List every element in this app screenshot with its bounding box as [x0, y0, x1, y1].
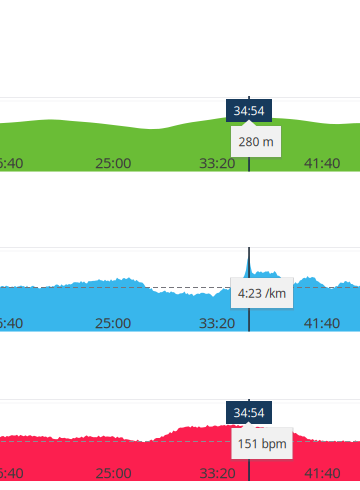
- staticText: 34:54: [233, 102, 264, 118]
- staticText: 33:20: [199, 153, 235, 172]
- staticText: 6:40: [0, 463, 23, 482]
- staticText: 33:20: [199, 313, 235, 332]
- staticText: 4:23 /km: [238, 285, 286, 301]
- staticText: 6:40: [0, 153, 23, 172]
- button[interactable]: Elevation 280 metres: [231, 126, 281, 157]
- staticText: 41:40: [304, 463, 340, 482]
- button[interactable]: Pace 4:23 per kilometre: [231, 278, 293, 308]
- staticText: 25:00: [95, 153, 131, 172]
- button[interactable]: Heart rate 151 bpm: [231, 428, 292, 459]
- button[interactable]: Time 34:54: [226, 99, 272, 122]
- button[interactable]: Time 34:54: [226, 401, 272, 424]
- staticText: 33:20: [199, 463, 235, 482]
- staticText: 25:00: [95, 313, 131, 332]
- staticText: 280 m: [238, 133, 273, 149]
- staticText: 34:54: [233, 404, 264, 420]
- staticText: 6:40: [0, 313, 23, 332]
- staticText: 151 bpm: [237, 435, 286, 451]
- staticText: 25:00: [95, 463, 131, 482]
- staticText: 41:40: [304, 153, 340, 172]
- staticText: 41:40: [304, 313, 340, 332]
